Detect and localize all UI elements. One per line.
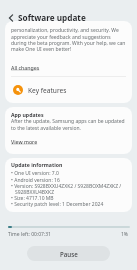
staticText: Update information: [11, 161, 63, 168]
button[interactable]: All changes: [11, 64, 40, 71]
staticText: Key features: [28, 86, 67, 95]
button[interactable]: Back: [4, 11, 18, 25]
staticText: View more: [11, 138, 38, 145]
staticText: All changes: [11, 64, 40, 71]
staticText: Pause: [60, 250, 78, 258]
button[interactable]: Key features: [5, 78, 132, 102]
button[interactable]: View more: [11, 138, 38, 145]
button[interactable]: Pause: [27, 246, 110, 261]
staticText: Time left: 00:07:31: [8, 231, 51, 238]
staticText: Software update: [18, 12, 86, 23]
staticText: App updates: [11, 111, 44, 118]
staticText: • One UI version: 7.0 • Android version:…: [11, 170, 122, 207]
staticText: 1%: [121, 231, 129, 238]
staticText: personalization, productivity, and secur…: [11, 27, 126, 52]
staticText: After the update, Samsung apps can be up…: [11, 118, 126, 131]
